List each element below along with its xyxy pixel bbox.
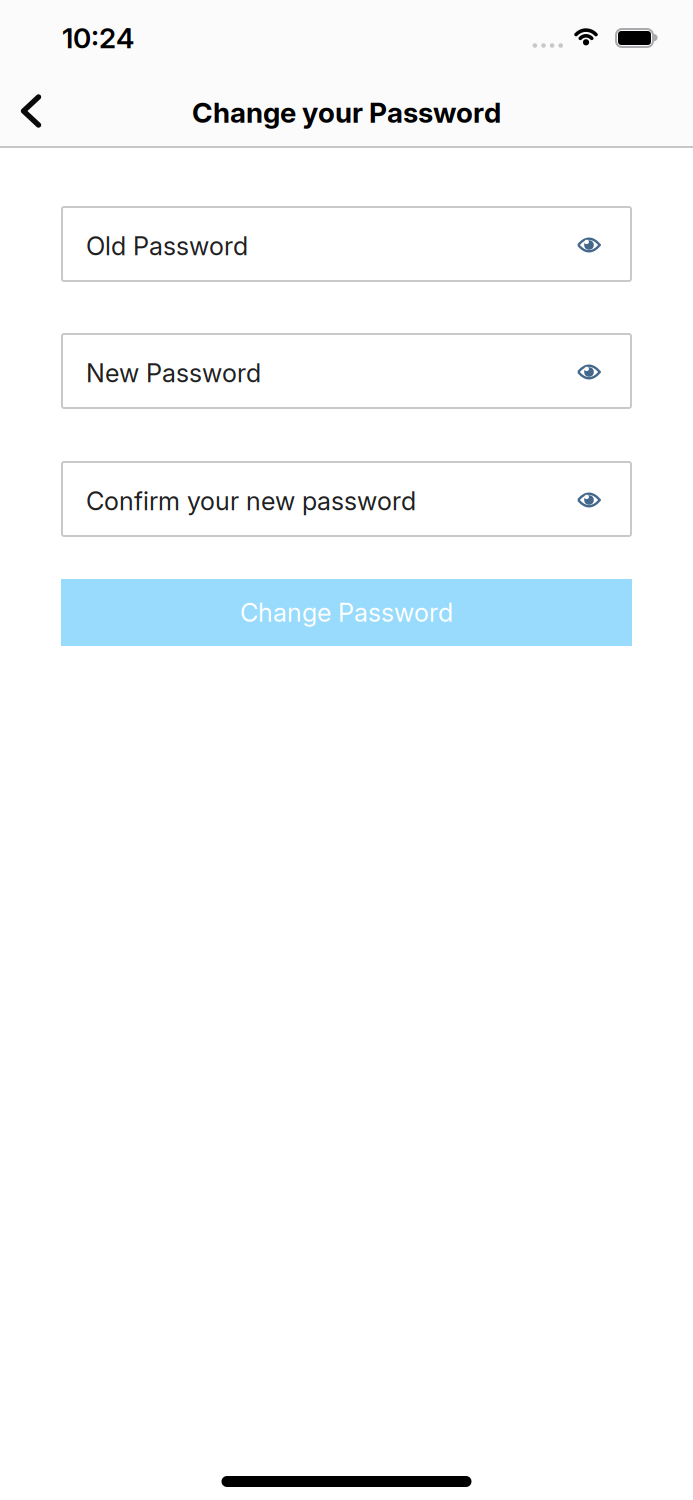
button[interactable]: Confirm your new password <box>61 461 632 537</box>
staticText: New Password <box>86 358 261 388</box>
staticText: Old Password <box>86 231 248 261</box>
button[interactable] <box>577 236 632 252</box>
button[interactable]: New Password <box>61 333 632 409</box>
button[interactable] <box>0 77 55 144</box>
button[interactable]: Old Password <box>61 206 632 282</box>
button[interactable]: Change Password <box>61 579 632 646</box>
staticText: Change your Password <box>192 96 501 129</box>
staticText: Change Password <box>240 598 453 627</box>
button[interactable] <box>577 491 632 507</box>
staticText: Confirm your new password <box>86 486 416 516</box>
button[interactable] <box>577 363 632 379</box>
staticText: 10:24 <box>62 21 134 54</box>
